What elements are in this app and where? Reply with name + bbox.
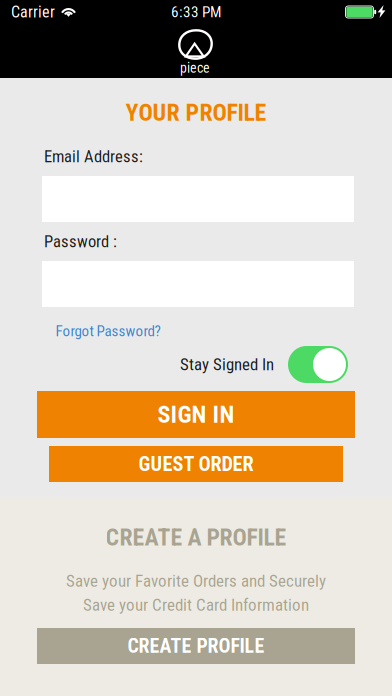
button[interactable]: Stay Signed In	[288, 346, 348, 383]
staticText: GUEST ORDER	[138, 452, 253, 476]
button[interactable]: CREATE PROFILE	[37, 628, 355, 664]
staticText: CREATE PROFILE	[127, 634, 264, 658]
staticText: Save your Credit Card Information	[83, 595, 309, 615]
staticText: Email Address:	[44, 147, 143, 166]
staticText: 6:33 PM	[171, 3, 221, 21]
staticText: Stay Signed In	[180, 355, 274, 374]
button[interactable]: SIGN IN	[37, 391, 355, 438]
staticText: Carrier	[11, 3, 55, 21]
staticText: SIGN IN	[157, 400, 234, 429]
staticText: Password :	[44, 232, 117, 251]
button[interactable]: GUEST ORDER	[49, 446, 343, 482]
button[interactable]: Forgot Password?	[44, 317, 172, 345]
staticText: piece	[180, 60, 210, 76]
staticText: Forgot Password?	[55, 322, 160, 340]
staticText: YOUR PROFILE	[125, 98, 266, 126]
staticText: Save your Favorite Orders and Securely	[66, 571, 326, 591]
staticText: CREATE A PROFILE	[105, 524, 286, 551]
